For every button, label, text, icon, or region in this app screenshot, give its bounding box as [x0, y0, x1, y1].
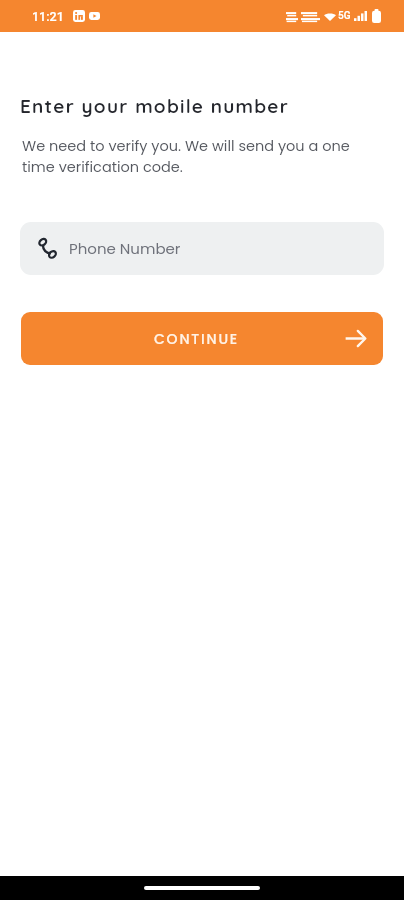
button[interactable]: CONTINUE [21, 312, 383, 365]
staticText: CONTINUE [154, 329, 239, 349]
other: Continue [345, 328, 366, 349]
button[interactable]: Phone Number [20, 222, 384, 275]
staticText: Enter your mobile number [20, 94, 290, 118]
staticText: We need to verify you. We will send you … [22, 136, 358, 177]
staticText: 5G [338, 10, 351, 22]
staticText: Phone Number [69, 238, 181, 259]
staticText: 11:21 [32, 9, 64, 24]
